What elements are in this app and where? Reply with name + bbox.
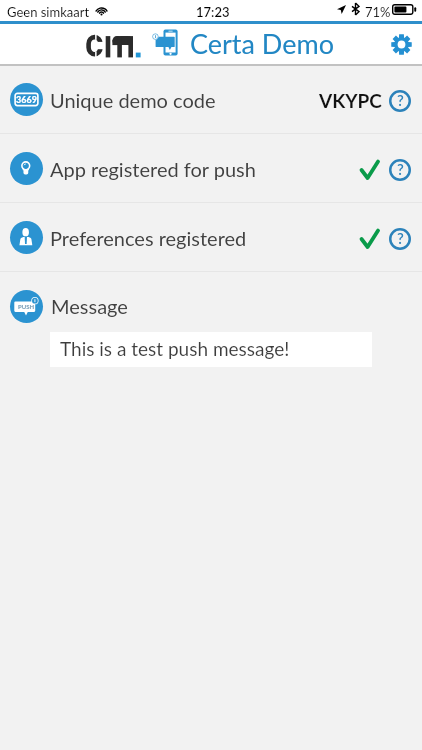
staticText: 3669 bbox=[16, 94, 37, 105]
button[interactable]: Settings bbox=[383, 26, 419, 62]
staticText: Unique demo code bbox=[50, 88, 216, 112]
staticText: 71% bbox=[365, 4, 391, 20]
button[interactable]: Help bbox=[388, 227, 412, 251]
staticText: Certa Demo bbox=[190, 27, 334, 59]
button[interactable]: Preferences registered bbox=[0, 203, 422, 272]
staticText: ? bbox=[397, 229, 404, 247]
staticText: 17:23 bbox=[196, 4, 230, 20]
button[interactable]: 3669 bbox=[0, 65, 422, 134]
button[interactable]: Help bbox=[388, 158, 412, 182]
button[interactable]: This is a test push message! bbox=[50, 332, 372, 367]
button[interactable]: App registered for push bbox=[0, 134, 422, 203]
staticText: VKYPC bbox=[319, 89, 382, 112]
staticText: Message bbox=[51, 294, 128, 318]
staticText: PUSH bbox=[18, 303, 35, 310]
staticText: ? bbox=[397, 91, 404, 109]
staticText: Preferences registered bbox=[50, 226, 247, 250]
staticText: Geen simkaart bbox=[7, 4, 90, 20]
button[interactable]: Help bbox=[388, 89, 412, 113]
staticText: ? bbox=[397, 160, 404, 178]
staticText: This is a test push message! bbox=[60, 337, 290, 360]
staticText: App registered for push bbox=[50, 157, 256, 181]
